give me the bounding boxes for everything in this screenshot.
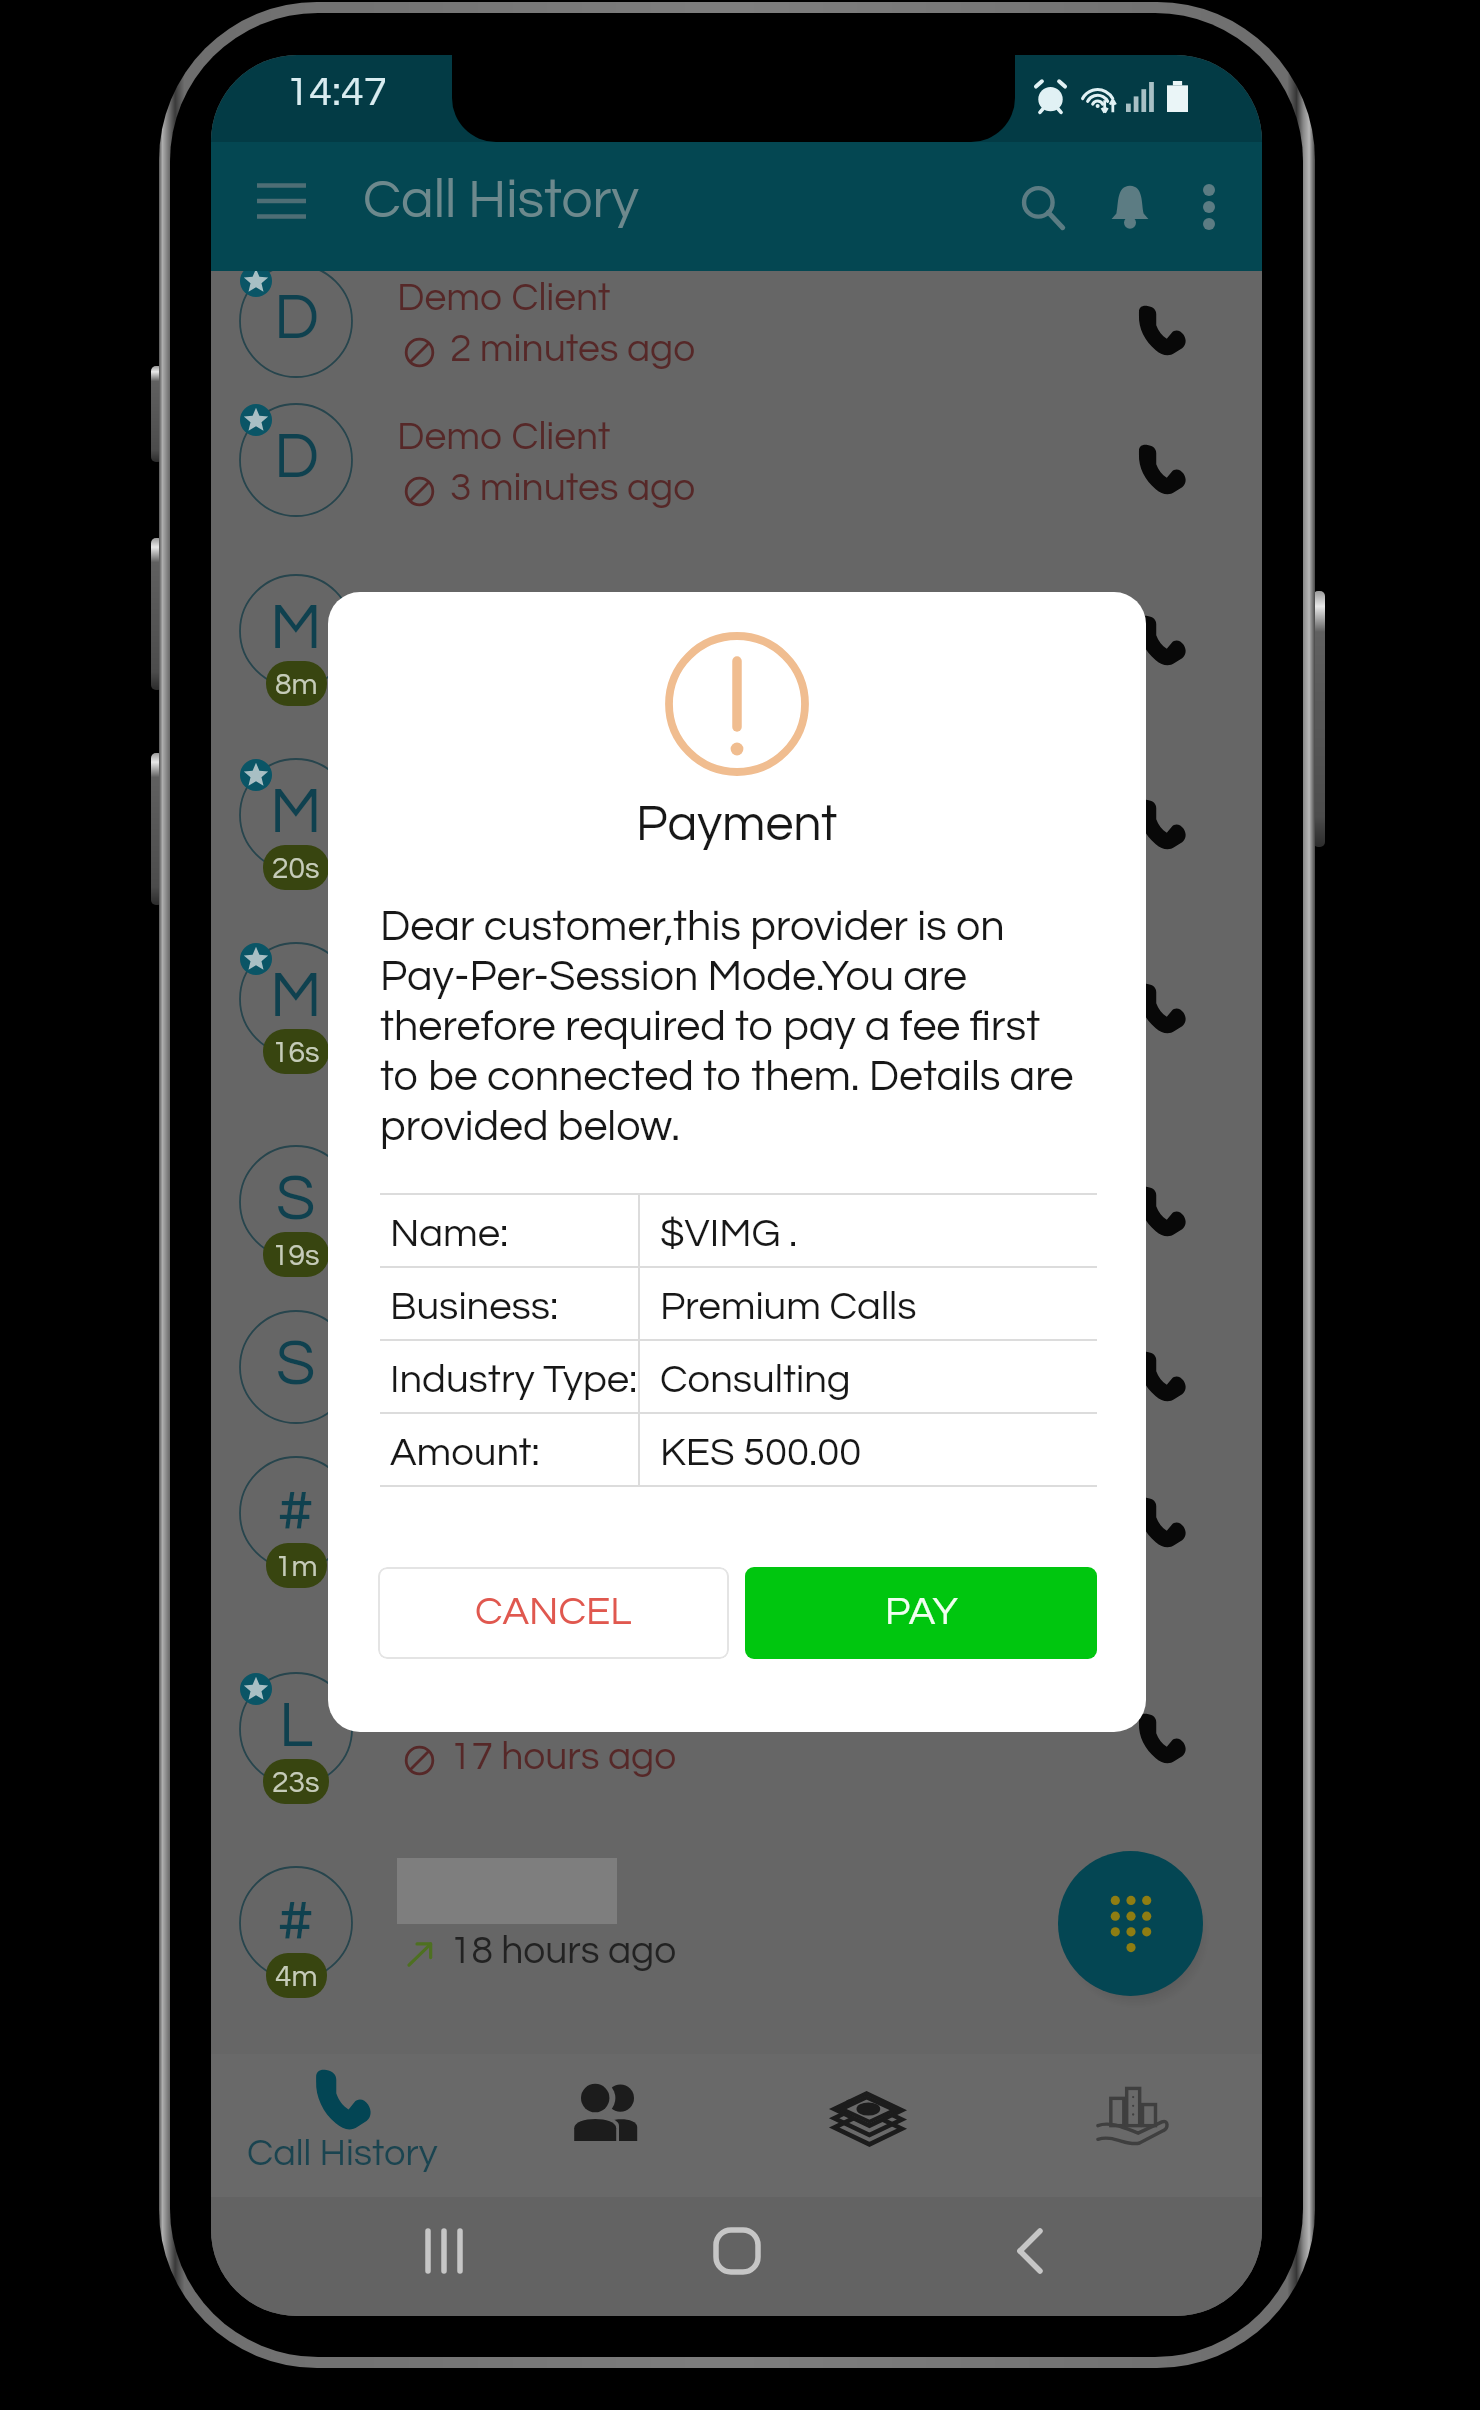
staticText: 1m bbox=[275, 1551, 318, 1582]
staticText: 2 hours ago bbox=[450, 1375, 655, 1415]
staticText: 14:47 bbox=[286, 71, 387, 114]
staticText: 1 hour ago bbox=[450, 1210, 637, 1250]
button[interactable]: Call back bbox=[1122, 290, 1202, 370]
staticText: 4m bbox=[275, 1961, 318, 1992]
button[interactable]: Call back bbox=[1122, 1482, 1202, 1562]
button[interactable]: CANCEL bbox=[378, 1567, 729, 1659]
button[interactable]: D bbox=[211, 389, 1262, 531]
staticText: M bbox=[270, 780, 322, 846]
staticText: S bbox=[276, 1332, 316, 1398]
staticText: Demo Client bbox=[397, 956, 611, 996]
staticText: Demo Client bbox=[397, 1159, 611, 1199]
button[interactable]: Call back bbox=[1122, 1171, 1202, 1251]
staticText: Demo Client bbox=[397, 1324, 611, 1364]
button[interactable]: Business bbox=[999, 2054, 1262, 2197]
button[interactable]: Search bbox=[998, 163, 1086, 251]
button[interactable]: Back bbox=[988, 2209, 1072, 2293]
button[interactable]: Payments bbox=[736, 2054, 999, 2197]
staticText: KES 500.00 bbox=[660, 1432, 862, 1473]
button[interactable]: M bbox=[211, 928, 1262, 1070]
button[interactable]: Call back bbox=[1122, 784, 1202, 864]
staticText: L bbox=[279, 1694, 314, 1760]
button[interactable]: S bbox=[211, 1296, 1262, 1438]
button[interactable]: Call back bbox=[1122, 1336, 1202, 1416]
staticText: 20s bbox=[272, 853, 320, 884]
staticText: Amount: bbox=[390, 1432, 540, 1473]
staticText: D bbox=[274, 286, 319, 352]
staticText: Call History bbox=[247, 2134, 438, 2173]
button[interactable]: Call back bbox=[1122, 968, 1202, 1048]
button[interactable]: Home bbox=[695, 2209, 779, 2293]
staticText: 8m bbox=[275, 669, 318, 700]
button[interactable]: L bbox=[211, 1658, 1262, 1800]
button[interactable]: More options bbox=[1174, 172, 1244, 242]
staticText: D bbox=[274, 425, 319, 491]
button[interactable]: Call back bbox=[1122, 429, 1202, 509]
staticText: Demo Client bbox=[397, 417, 611, 457]
staticText: # bbox=[277, 1888, 315, 1954]
button[interactable]: Call back bbox=[1122, 600, 1202, 680]
button[interactable]: D bbox=[211, 250, 1262, 392]
staticText: 17 hours ago bbox=[450, 1737, 677, 1777]
staticText: 19s bbox=[272, 1240, 320, 1271]
button[interactable]: Contacts bbox=[473, 2054, 736, 2197]
staticText: 23s bbox=[272, 1767, 320, 1798]
staticText: Payment bbox=[636, 799, 838, 851]
staticText: Name: bbox=[390, 1213, 509, 1254]
staticText: Business: bbox=[390, 1286, 559, 1327]
button[interactable]: Call back bbox=[1122, 1698, 1202, 1778]
staticText: 7 minutes ago bbox=[450, 823, 696, 863]
staticText: Consulting bbox=[660, 1359, 851, 1400]
staticText: Dear customer,this provider is on Pay-Pe… bbox=[380, 905, 1074, 1149]
staticText: 18 hours ago bbox=[450, 1931, 677, 1971]
staticText: M bbox=[270, 596, 322, 662]
button[interactable]: Recent apps bbox=[402, 2209, 486, 2293]
staticText: CANCEL bbox=[475, 1591, 632, 1632]
staticText: PAY bbox=[885, 1591, 958, 1632]
staticText: 2 minutes ago bbox=[450, 329, 696, 369]
staticText: 3 minutes ago bbox=[450, 468, 696, 508]
staticText: 9 minutes ago bbox=[450, 1007, 696, 1047]
staticText: S bbox=[276, 1167, 316, 1233]
button[interactable]: Open dialpad bbox=[1058, 1851, 1203, 1996]
staticText: Premium Calls bbox=[660, 1286, 917, 1327]
button[interactable]: Open navigation drawer bbox=[242, 162, 320, 240]
button[interactable]: Notifications bbox=[1086, 163, 1174, 251]
button[interactable]: M bbox=[211, 560, 1262, 702]
button[interactable]: Call back bbox=[1122, 1892, 1202, 1972]
staticText: M bbox=[270, 964, 322, 1030]
staticText: # bbox=[277, 1478, 315, 1544]
staticText: Demo Client bbox=[397, 278, 611, 318]
staticText: 5 minutes ago bbox=[450, 639, 696, 679]
button[interactable]: Call History bbox=[211, 2054, 473, 2197]
staticText: Industry Type: bbox=[390, 1359, 638, 1400]
staticText: Demo Client bbox=[397, 588, 611, 628]
button[interactable]: PAY bbox=[745, 1567, 1097, 1659]
staticText: Call History bbox=[363, 172, 639, 229]
button[interactable]: # bbox=[211, 1852, 1262, 1994]
staticText: 16s bbox=[272, 1037, 320, 1068]
button[interactable]: S bbox=[211, 1131, 1262, 1273]
staticText: $VIMG . bbox=[660, 1213, 797, 1254]
button[interactable]: # bbox=[211, 1442, 1262, 1584]
staticText: Demo Client bbox=[397, 1470, 611, 1510]
button[interactable]: M bbox=[211, 744, 1262, 886]
